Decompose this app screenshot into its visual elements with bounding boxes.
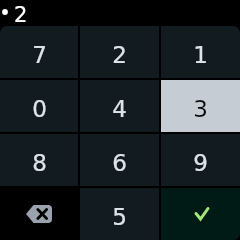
staticText: 4: [112, 96, 127, 123]
button[interactable]: 2: [80, 26, 159, 78]
staticText: 2: [112, 42, 127, 69]
button[interactable]: 1: [161, 26, 240, 78]
staticText: 9: [193, 150, 208, 177]
staticText: 7: [32, 42, 47, 69]
button[interactable]: Confirm: [161, 188, 240, 240]
staticText: 6: [112, 150, 127, 177]
button[interactable]: 7: [0, 26, 78, 78]
staticText: 2: [14, 3, 28, 27]
button[interactable]: 4: [80, 80, 159, 132]
staticText: 8: [32, 150, 47, 177]
button[interactable]: 0: [0, 80, 78, 132]
staticText: 5: [112, 204, 127, 231]
button[interactable]: 8: [0, 134, 78, 186]
button[interactable]: 6: [80, 134, 159, 186]
staticText: 0: [32, 96, 47, 123]
button[interactable]: Backspace: [0, 188, 78, 240]
staticText: 3: [193, 96, 208, 123]
staticText: 1: [193, 42, 208, 69]
button[interactable]: 9: [161, 134, 240, 186]
button[interactable]: 3: [161, 80, 240, 132]
button[interactable]: 5: [80, 188, 159, 240]
